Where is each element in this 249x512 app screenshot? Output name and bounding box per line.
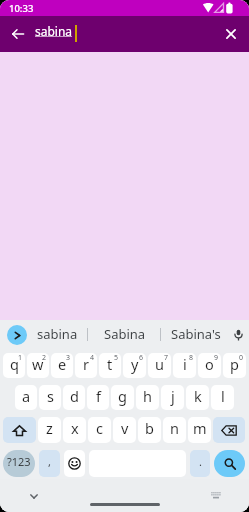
staticText: j <box>171 386 175 406</box>
staticText: Sabina's <box>171 325 221 343</box>
staticText: 1 <box>18 353 23 363</box>
button[interactable]: s <box>39 385 61 410</box>
button[interactable]: y <box>123 353 146 378</box>
staticText: o <box>205 354 214 374</box>
button[interactable]: o <box>198 353 221 378</box>
button[interactable]: v <box>113 417 136 443</box>
button[interactable]: e <box>51 353 73 378</box>
button[interactable]: t <box>99 353 121 378</box>
staticText: c <box>96 418 103 438</box>
staticText: x <box>71 418 79 438</box>
staticText: a <box>22 386 31 406</box>
staticText: q <box>10 354 19 374</box>
staticText: 4 <box>90 353 95 363</box>
staticText: 7 <box>164 353 169 363</box>
button[interactable]: u <box>148 353 171 378</box>
staticText: sabina <box>37 325 78 343</box>
staticText: p <box>230 354 239 374</box>
button[interactable]: r <box>75 353 97 378</box>
staticText: , <box>48 454 51 469</box>
staticText: e <box>58 354 67 374</box>
button[interactable]: p <box>223 353 246 378</box>
button[interactable]: g <box>111 385 134 410</box>
button[interactable]: z <box>38 417 61 443</box>
staticText: h <box>143 386 152 406</box>
button[interactable]: w <box>27 353 49 378</box>
staticText: 2 <box>42 353 47 363</box>
staticText: g <box>118 386 127 406</box>
staticText: l <box>221 386 225 406</box>
staticText: d <box>70 386 79 406</box>
button[interactable]: i <box>173 353 196 378</box>
staticText: k <box>194 386 202 406</box>
staticText: i <box>183 354 187 374</box>
staticText: 0 <box>239 353 244 363</box>
staticText: 9 <box>214 353 219 363</box>
button[interactable]: Sabina <box>94 320 156 349</box>
button[interactable]: q <box>3 353 25 378</box>
staticText: 10:33 <box>9 2 34 15</box>
staticText: . <box>199 454 202 469</box>
staticText: m <box>193 418 207 438</box>
button[interactable]: Switch keyboard <box>204 483 228 507</box>
staticText: 8 <box>189 353 194 363</box>
button[interactable]: Search <box>214 450 245 477</box>
staticText: sabina <box>35 23 73 39</box>
staticText: 5 <box>114 353 119 363</box>
button[interactable]: , <box>39 450 60 477</box>
staticText: 6 <box>139 353 144 363</box>
button[interactable]: l <box>211 385 234 410</box>
button[interactable]: Voice input <box>227 320 249 349</box>
button[interactable]: a <box>15 385 37 410</box>
button[interactable]: k <box>186 385 209 410</box>
staticText: f <box>96 386 101 406</box>
button[interactable]: m <box>188 417 211 443</box>
staticText: n <box>170 418 179 438</box>
staticText: r <box>83 354 89 374</box>
staticText: ?123 <box>7 454 31 469</box>
button[interactable]: j <box>161 385 184 410</box>
staticText: v <box>121 418 129 438</box>
button[interactable]: n <box>163 417 186 443</box>
staticText: w <box>32 354 44 374</box>
staticText: u <box>155 354 164 374</box>
button[interactable]: Hide keyboard <box>22 484 46 508</box>
button[interactable]: ?123 <box>3 450 35 477</box>
button[interactable]: d <box>63 385 85 410</box>
button[interactable]: . <box>190 450 210 477</box>
staticText: z <box>46 418 53 438</box>
button[interactable]: Clear query <box>213 16 249 52</box>
staticText: 3 <box>66 353 71 363</box>
staticText: s <box>47 386 54 406</box>
staticText: b <box>145 418 154 438</box>
button[interactable]: b <box>138 417 161 443</box>
button[interactable]: More suggestions <box>7 325 27 345</box>
button[interactable]: c <box>88 417 111 443</box>
button[interactable]: Navigate up <box>0 16 36 52</box>
button[interactable]: Sabina's <box>163 320 228 349</box>
button[interactable]: h <box>136 385 159 410</box>
button[interactable]: sabina <box>30 320 85 349</box>
button[interactable]: x <box>63 417 86 443</box>
button[interactable]: Shift <box>3 417 36 443</box>
staticText: y <box>131 354 139 374</box>
button[interactable]: Emoji <box>64 450 85 477</box>
button[interactable]: Backspace <box>213 417 245 443</box>
button[interactable]: f <box>87 385 109 410</box>
staticText: t <box>107 354 113 374</box>
staticText: Sabina <box>104 325 146 343</box>
